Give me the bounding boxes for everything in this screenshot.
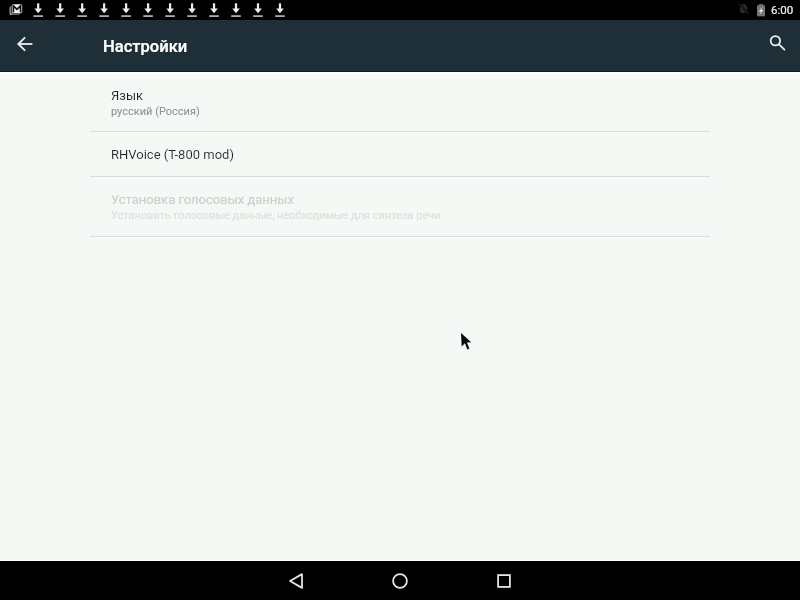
staticText: Установить голосовые данные, необходимые… — [111, 209, 441, 222]
button[interactable]: Установка голосовых данных — [0, 175, 800, 236]
staticText: Язык — [111, 88, 143, 103]
button[interactable]: Back — [281, 566, 311, 596]
button[interactable]: Язык — [0, 71, 800, 131]
staticText: 6:00 — [771, 3, 794, 16]
button[interactable]: Recents — [489, 566, 519, 596]
button[interactable]: RHVoice (T-800 mod) — [0, 130, 800, 176]
staticText: русский (Россия) — [111, 105, 200, 118]
staticText: RHVoice (T-800 mod) — [111, 147, 234, 162]
button[interactable]: Search — [756, 24, 796, 64]
button[interactable]: Back — [7, 26, 43, 62]
staticText: Настройки — [103, 37, 188, 56]
button[interactable]: Home — [385, 566, 415, 596]
staticText: Установка голосовых данных — [111, 192, 294, 207]
